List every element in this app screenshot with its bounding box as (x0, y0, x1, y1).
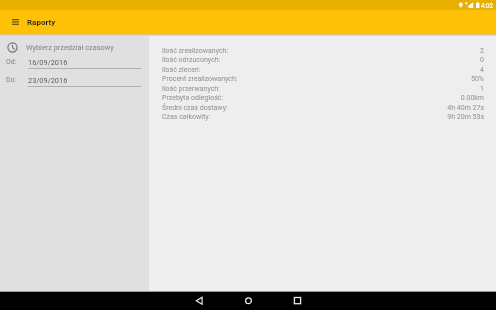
staticText: 4 (480, 66, 484, 74)
staticText: 50% (471, 75, 484, 83)
staticText: 0.00km (460, 94, 484, 102)
button[interactable]: Do: (0, 76, 149, 88)
staticText: Procent zrealizowanych: (162, 75, 238, 83)
staticText: 4h 40m 27s (447, 104, 484, 112)
button[interactable]: Back (175, 291, 224, 310)
staticText: 16/09/2016 (28, 58, 68, 67)
staticText: 1 (480, 85, 484, 93)
staticText: 2 (480, 47, 484, 55)
staticText: Wybierz przedział czasowy (26, 43, 114, 52)
staticText: Czas całkowity: (162, 113, 211, 121)
staticText: Do: (6, 76, 28, 84)
staticText: 0 (480, 56, 484, 64)
staticText: Ilość odrzuconych: (162, 56, 221, 64)
button[interactable]: Recent apps (273, 291, 322, 310)
staticText: Od: (6, 58, 28, 66)
button[interactable]: Home (224, 291, 273, 310)
staticText: 4:02 (481, 2, 494, 9)
button[interactable]: Open navigation drawer (6, 12, 25, 32)
button[interactable]: Od: (0, 58, 149, 70)
staticText: Ilość zrealizowanych: (162, 47, 229, 55)
staticText: Ilość zleceń: (162, 66, 201, 74)
staticText: Raporty (27, 18, 56, 27)
staticText: Przebyta odległość: (162, 94, 224, 102)
button[interactable]: Wybierz przedział czasowy (0, 41, 149, 54)
staticText: 23/09/2016 (28, 76, 68, 85)
staticText: Średni czas dostawy: (162, 104, 228, 112)
staticText: 9h 20m 53s (447, 113, 484, 121)
staticText: Ilość przerwanych: (162, 85, 220, 93)
